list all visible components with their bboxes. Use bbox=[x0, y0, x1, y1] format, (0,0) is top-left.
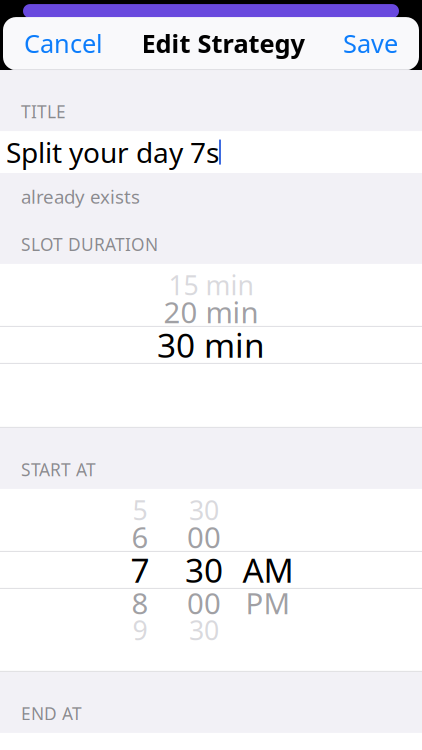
staticText: 30 bbox=[189, 612, 219, 648]
staticText: 6 bbox=[131, 517, 148, 556]
staticText: 00 bbox=[187, 517, 221, 556]
staticText: 00 bbox=[187, 583, 221, 622]
staticText: 15 min bbox=[168, 267, 253, 303]
staticText: Save bbox=[343, 26, 398, 60]
staticText: 20 min bbox=[163, 292, 258, 331]
staticText: 7 bbox=[130, 548, 149, 592]
staticText: 30 bbox=[185, 548, 223, 592]
staticText: PM bbox=[245, 583, 290, 622]
staticText: 5 bbox=[132, 492, 147, 528]
button[interactable]: Save bbox=[322, 14, 419, 72]
staticText: START AT bbox=[21, 458, 96, 481]
staticText: SLOT DURATION bbox=[21, 233, 158, 256]
staticText: already exists bbox=[21, 184, 140, 209]
staticText: Edit Strategy bbox=[141, 26, 304, 60]
staticText: 30 min bbox=[157, 323, 265, 367]
button[interactable]: Cancel bbox=[3, 14, 124, 72]
staticText: Split your day 7s bbox=[6, 133, 219, 171]
staticText: 8 bbox=[131, 583, 148, 622]
staticText: TITLE bbox=[21, 100, 66, 123]
staticText: 9 bbox=[132, 612, 147, 648]
staticText: 30 bbox=[189, 492, 219, 528]
staticText: END AT bbox=[21, 702, 82, 725]
staticText: AM bbox=[242, 548, 293, 592]
staticText: Cancel bbox=[24, 26, 103, 60]
